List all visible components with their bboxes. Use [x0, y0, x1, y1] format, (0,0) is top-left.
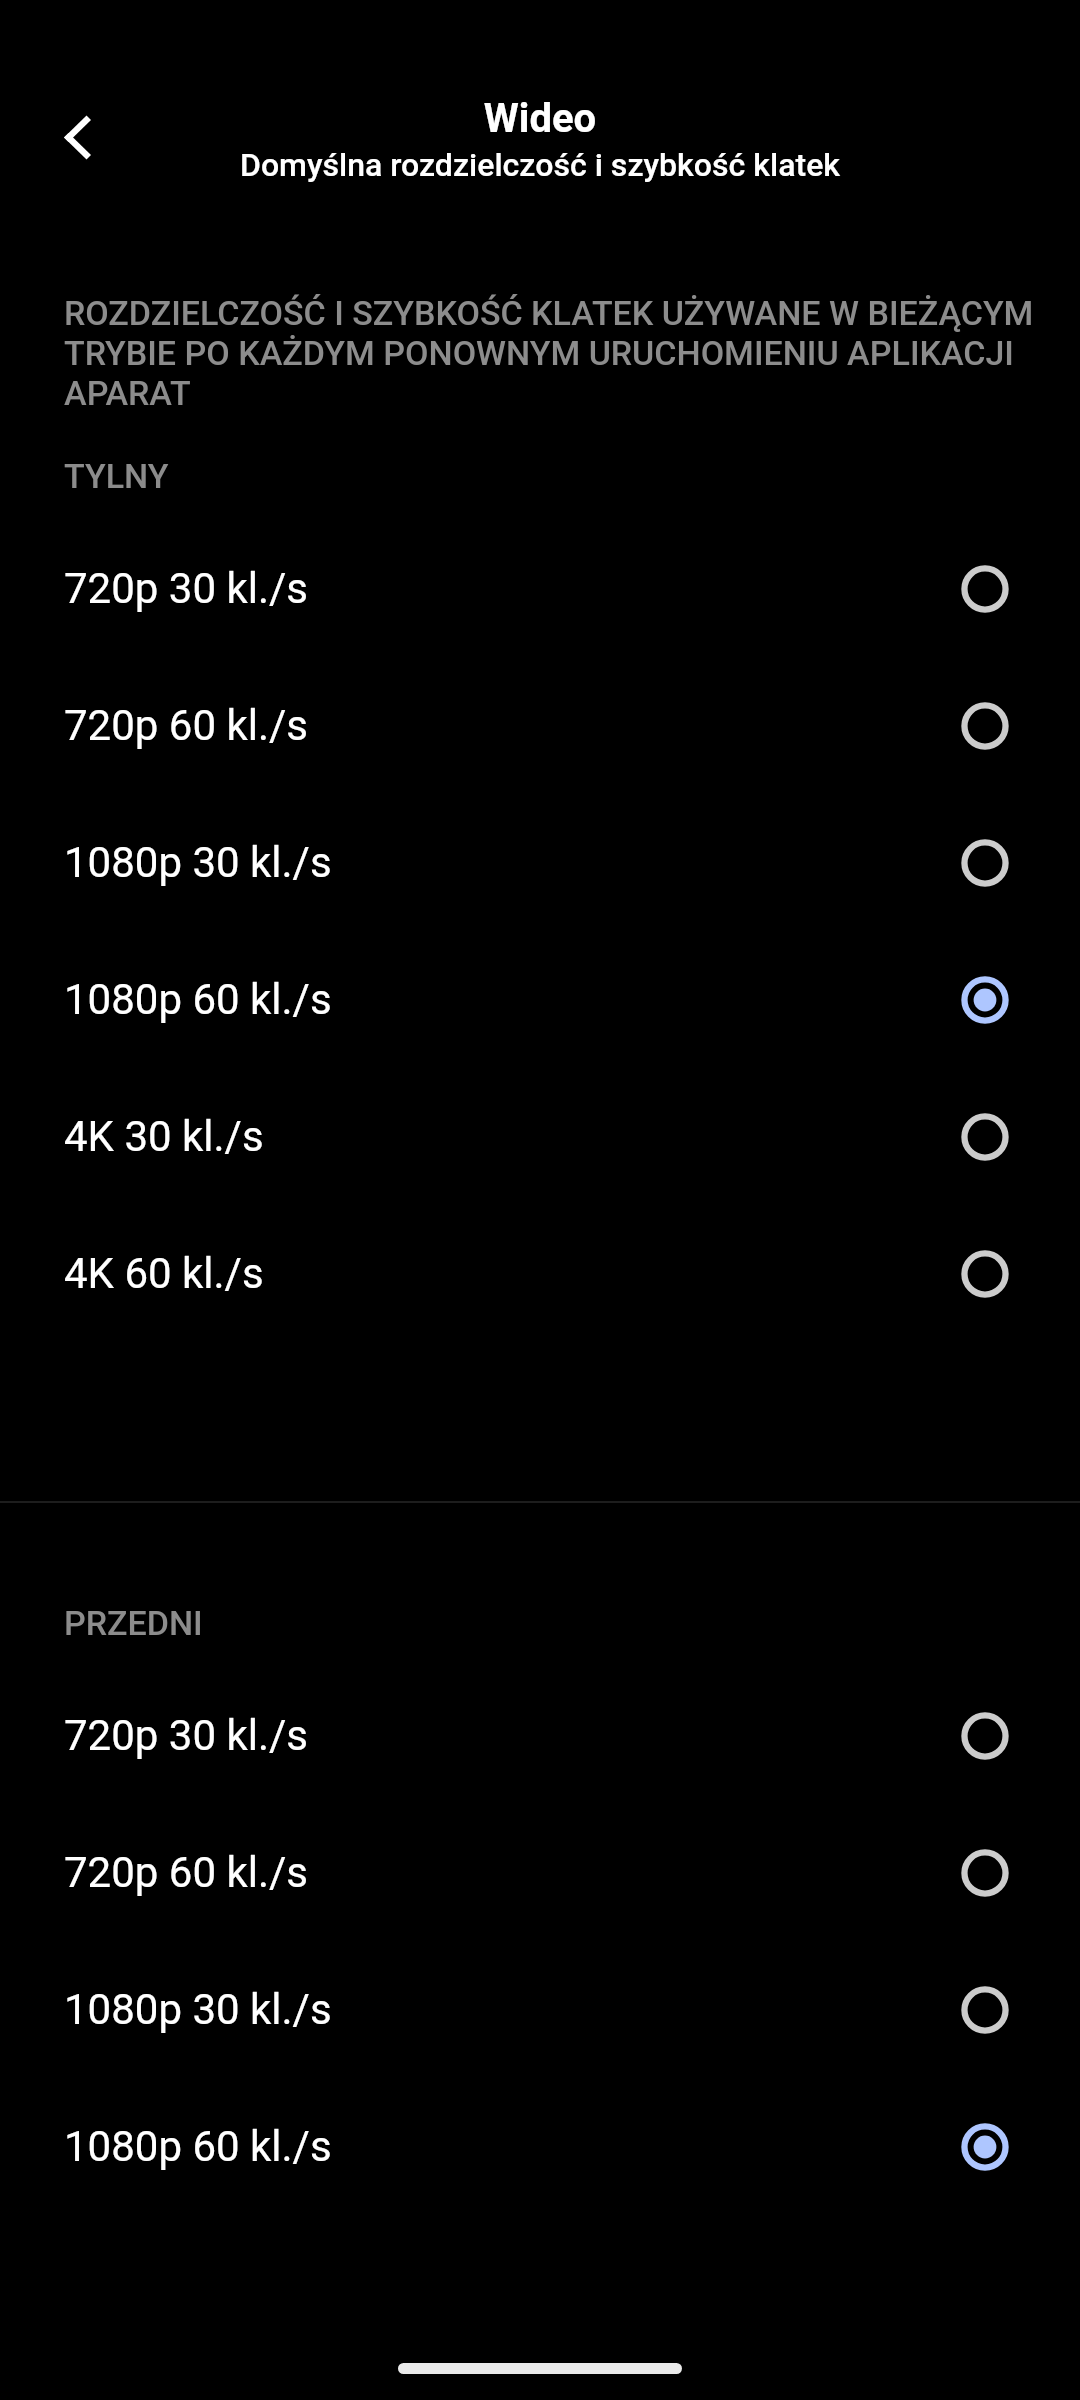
staticText: TYLNY — [64, 456, 169, 496]
button[interactable]: 4K 30 kl./s — [0, 1068, 1080, 1205]
staticText: 1080p 30 kl./s — [64, 838, 332, 887]
button[interactable]: 1080p 60 kl./s — [0, 931, 1080, 1068]
staticText: 720p 30 kl./s — [64, 564, 309, 613]
button[interactable]: 1080p 30 kl./s — [0, 794, 1080, 931]
staticText: Wideo — [0, 95, 1080, 142]
button[interactable]: Back — [27, 87, 127, 187]
staticText: 1080p 30 kl./s — [64, 1985, 332, 2034]
staticText: 4K 60 kl./s — [64, 1249, 264, 1298]
button[interactable]: 1080p 30 kl./s — [0, 1941, 1080, 2078]
staticText: Domyślna rozdzielczość i szybkość klatek — [0, 146, 1080, 184]
staticText: 720p 30 kl./s — [64, 1711, 309, 1760]
button[interactable]: 720p 60 kl./s — [0, 657, 1080, 794]
staticText: ROZDZIELCZOŚĆ I SZYBKOŚĆ KLATEK UŻYWANE … — [64, 293, 1034, 413]
staticText: 1080p 60 kl./s — [64, 975, 332, 1024]
button[interactable]: 4K 60 kl./s — [0, 1205, 1080, 1342]
staticText: PRZEDNI — [64, 1603, 203, 1643]
button[interactable]: 720p 60 kl./s — [0, 1804, 1080, 1941]
staticText: 4K 30 kl./s — [64, 1112, 264, 1161]
button[interactable]: 720p 30 kl./s — [0, 1667, 1080, 1804]
staticText: 720p 60 kl./s — [64, 1848, 309, 1897]
staticText: 1080p 60 kl./s — [64, 2122, 332, 2171]
button[interactable]: 1080p 60 kl./s — [0, 2078, 1080, 2215]
button[interactable]: 720p 30 kl./s — [0, 520, 1080, 657]
staticText: 720p 60 kl./s — [64, 701, 309, 750]
